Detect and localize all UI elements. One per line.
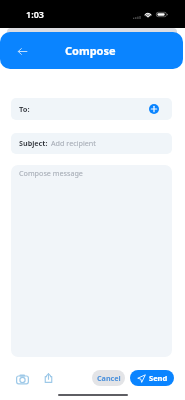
button[interactable]: To: bbox=[11, 98, 172, 120]
button[interactable]: Camera bbox=[16, 374, 29, 384]
staticText: Subject: bbox=[19, 138, 48, 148]
staticText: 1:03 bbox=[26, 8, 44, 20]
staticText: Cancel bbox=[97, 373, 121, 383]
button[interactable]: Compose message bbox=[11, 165, 172, 357]
staticText: To: bbox=[19, 104, 30, 114]
button[interactable]: Share bbox=[44, 373, 53, 383]
staticText: Add recipient bbox=[51, 138, 96, 148]
staticText: Send bbox=[149, 373, 168, 383]
staticText: Compose bbox=[65, 43, 116, 58]
button[interactable]: Subject: bbox=[11, 133, 172, 154]
staticText: Compose message bbox=[19, 168, 83, 178]
button[interactable]: Back bbox=[14, 43, 31, 60]
button[interactable]: Add recipient bbox=[149, 104, 159, 114]
button[interactable]: Send bbox=[130, 370, 174, 386]
button[interactable]: Cancel bbox=[92, 370, 125, 386]
